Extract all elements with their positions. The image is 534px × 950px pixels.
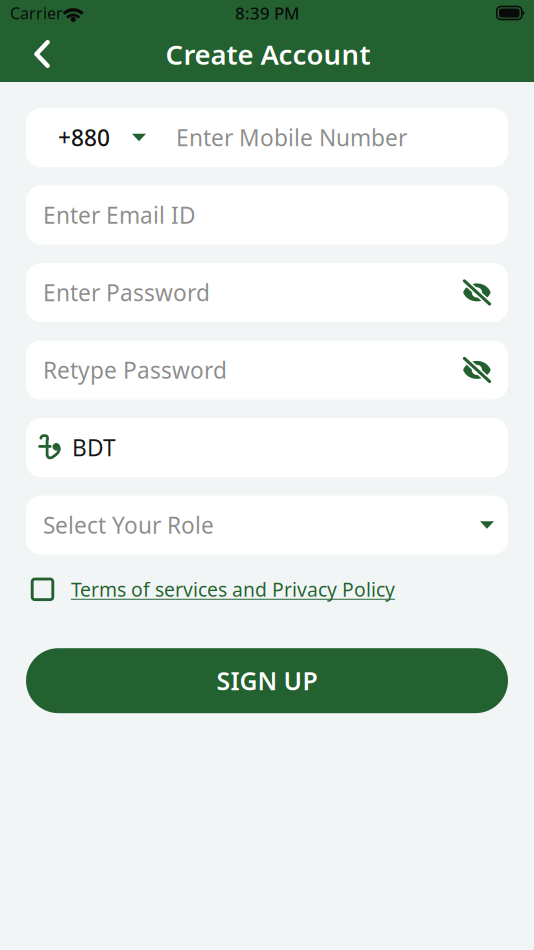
staticText: Create Account — [165, 36, 370, 72]
staticText: Retype Password — [43, 355, 227, 385]
button[interactable]: Accept terms of service — [22, 569, 63, 610]
button[interactable]: Terms of services and Privacy Policy — [63, 567, 399, 611]
button[interactable]: Show retyped password — [452, 340, 508, 399]
staticText: SIGN UP — [216, 664, 317, 697]
button[interactable]: Back — [17, 29, 67, 79]
staticText: Enter Password — [43, 277, 210, 307]
button[interactable]: SIGN UP — [26, 648, 508, 713]
button[interactable]: Show password — [452, 263, 508, 322]
button[interactable]: Select Your Role — [26, 495, 508, 554]
staticText: Enter Email ID — [43, 200, 196, 230]
staticText: BDT — [72, 432, 116, 462]
staticText: 8:39 PM — [235, 2, 299, 24]
staticText: Terms of services and Privacy Policy — [71, 576, 395, 602]
staticText: Select Your Role — [43, 510, 214, 540]
staticText: Carrier — [10, 2, 63, 24]
staticText: Enter Mobile Number — [176, 122, 407, 152]
staticText: +880 — [58, 122, 110, 152]
button[interactable]: Select country code — [26, 108, 160, 167]
